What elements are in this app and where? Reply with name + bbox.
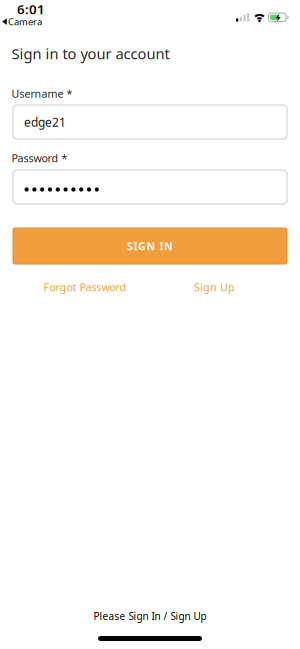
staticText: Camera — [8, 15, 42, 28]
button[interactable]: Camera — [8, 15, 42, 28]
staticText: Sign in to your account — [11, 44, 169, 63]
staticText: Password * — [11, 151, 67, 165]
staticText: Sign Up — [194, 280, 235, 294]
staticText: Forgot Password — [43, 280, 126, 294]
button[interactable]: Forgot Password — [25, 279, 145, 295]
staticText: 6:01 — [17, 0, 45, 18]
staticText: Please Sign In / Sign Up — [93, 609, 206, 623]
staticText: edge21 — [24, 114, 66, 130]
button[interactable] — [13, 170, 287, 204]
staticText: SIGN IN — [127, 239, 173, 253]
button[interactable]: SIGN IN — [13, 228, 287, 264]
button[interactable]: edge21 — [13, 105, 287, 139]
staticText: Username * — [11, 86, 72, 101]
button[interactable]: Sign Up — [174, 279, 254, 295]
